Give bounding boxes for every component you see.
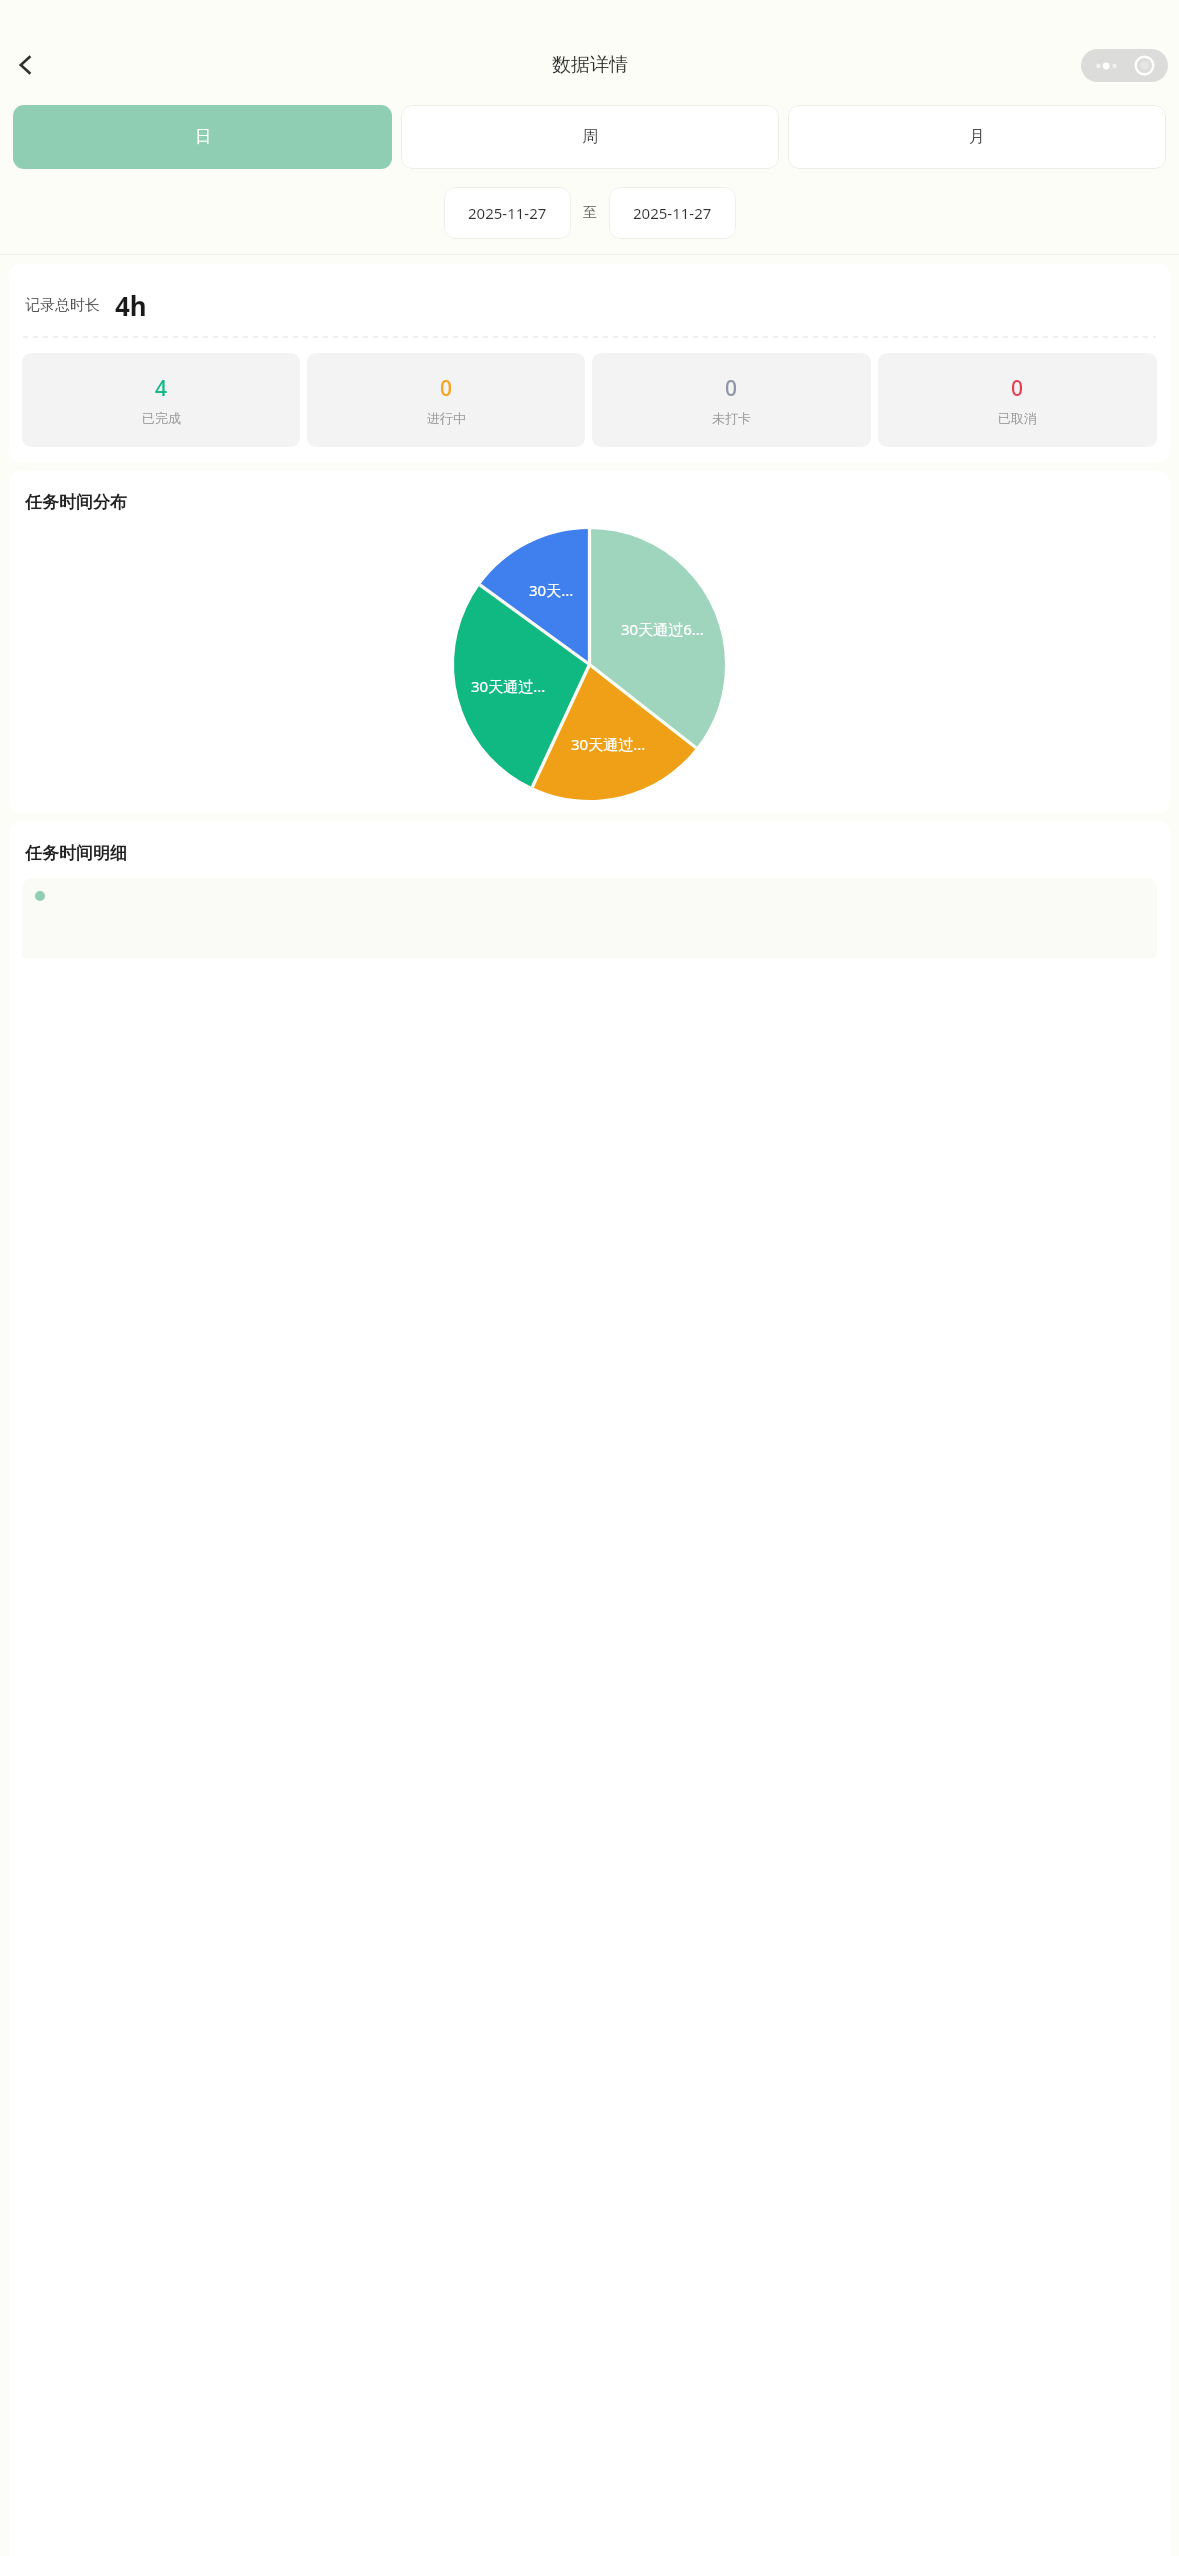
button[interactable]: Back — [3, 42, 49, 88]
staticText: 4 — [155, 374, 168, 403]
button[interactable]: 0 — [878, 353, 1157, 447]
staticText: 30天... — [529, 580, 574, 600]
button[interactable]: 周 — [401, 105, 779, 169]
staticText: 数据详情 — [552, 53, 628, 77]
button[interactable]: 日 — [13, 105, 392, 169]
button[interactable]: 2025-11-27 — [609, 187, 736, 239]
staticText: 30天通过... — [471, 676, 546, 696]
staticText: 2025-11-27 — [633, 203, 712, 223]
staticText: 未打卡 — [712, 410, 751, 426]
staticText: 30天通过6... — [621, 619, 704, 639]
staticText: 进行中 — [427, 410, 466, 426]
staticText: 30天通过... — [571, 734, 646, 754]
staticText: 已取消 — [998, 410, 1037, 426]
staticText: 2025-11-27 — [468, 203, 547, 223]
staticText: 任务时间分布 — [25, 492, 127, 513]
staticText: 0 — [440, 374, 453, 403]
button[interactable] — [22, 878, 1157, 958]
staticText: 至 — [583, 204, 597, 222]
staticText: 4h — [115, 288, 147, 323]
staticText: 已完成 — [142, 410, 181, 426]
button[interactable]: Mini program menu — [1081, 49, 1168, 82]
button[interactable]: 0 — [592, 353, 871, 447]
button[interactable]: 月 — [788, 105, 1166, 169]
button[interactable]: 4 — [22, 353, 300, 447]
staticText: 0 — [725, 374, 738, 403]
staticText: 记录总时长 — [25, 296, 100, 315]
staticText: 日 — [195, 127, 211, 147]
staticText: 月 — [969, 127, 985, 147]
staticText: 任务时间明细 — [25, 843, 127, 864]
button[interactable]: 2025-11-27 — [444, 187, 571, 239]
staticText: 周 — [582, 127, 598, 147]
staticText: 0 — [1011, 374, 1024, 403]
button[interactable]: 0 — [307, 353, 585, 447]
